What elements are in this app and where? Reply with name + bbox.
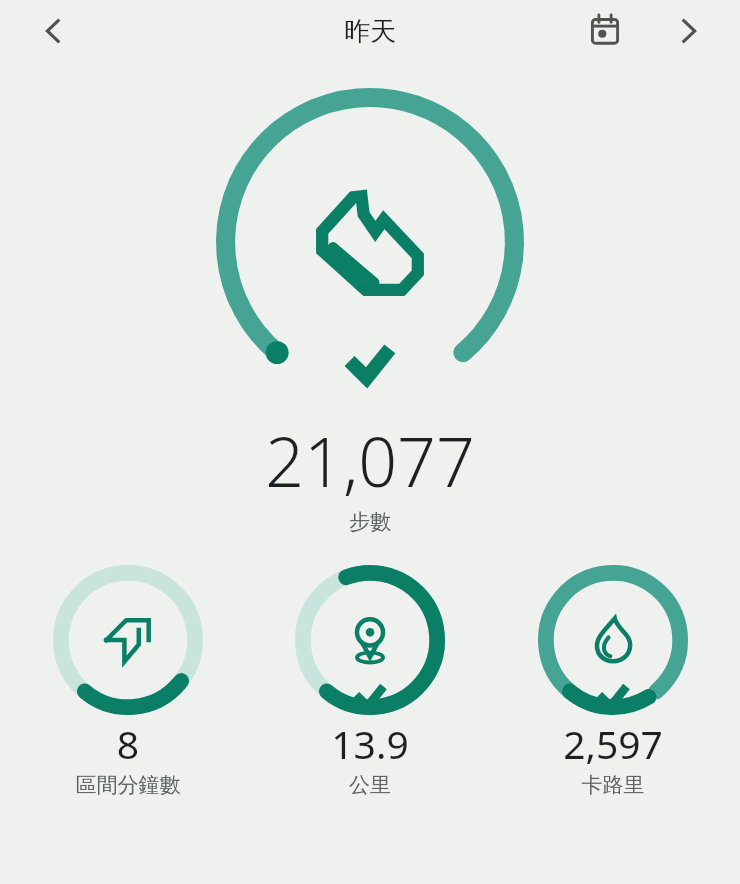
- button[interactable]: 區間分鐘數: [13, 565, 243, 798]
- staticText: 2,597: [498, 717, 728, 770]
- staticText: 區間分鐘數: [13, 772, 243, 798]
- staticText: 卡路里: [498, 772, 728, 798]
- staticText: 13.9: [255, 717, 485, 770]
- button[interactable]: Calendar: [576, 2, 634, 60]
- staticText: 21,077: [0, 414, 740, 507]
- button[interactable]: 卡路里: [498, 565, 728, 798]
- staticText: 昨天: [344, 15, 396, 48]
- staticText: 步數: [0, 509, 740, 535]
- button[interactable]: Previous day: [24, 2, 82, 60]
- button[interactable]: Next day: [660, 2, 718, 60]
- staticText: 公里: [255, 772, 485, 798]
- staticText: 8: [13, 717, 243, 770]
- button[interactable]: 公里: [255, 565, 485, 798]
